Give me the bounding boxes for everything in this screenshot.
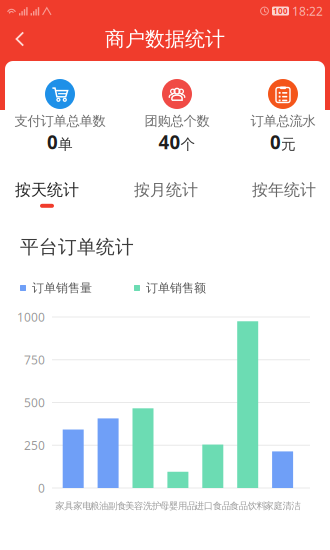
staticText: 个 (180, 135, 195, 153)
staticText: 1000 (17, 309, 45, 325)
staticText: 250 (24, 437, 45, 453)
staticText: 美容洗护 (125, 500, 161, 512)
staticText: 按年统计 (252, 180, 316, 200)
staticText: 500 (24, 394, 45, 410)
button[interactable]: 支付订单总单数 (0, 61, 120, 157)
button[interactable]: 按年统计 (234, 179, 330, 209)
button[interactable]: 按天统计 (0, 179, 97, 209)
staticText: 0 (38, 480, 45, 496)
staticText: 订单销售额 (146, 281, 206, 295)
button[interactable]: Back (0, 22, 40, 56)
staticText: 母婴用品 (160, 500, 196, 512)
staticText: 订单总流水 (250, 113, 315, 129)
staticText: 按月统计 (134, 180, 198, 200)
button[interactable]: 订单总流水 (223, 61, 330, 157)
staticText: 进口食品 (195, 500, 231, 512)
staticText: 支付订单总单数 (14, 113, 105, 129)
button[interactable]: 团购总个数 (117, 61, 237, 157)
staticText: 0 (270, 130, 281, 154)
staticText: 订单销售量 (32, 281, 92, 295)
staticText: 元 (281, 135, 296, 153)
staticText: 商户数据统计 (105, 27, 225, 51)
staticText: 750 (24, 352, 45, 368)
staticText: 40 (158, 130, 180, 154)
staticText: 食品饮料 (230, 500, 266, 512)
staticText: 团购总个数 (144, 113, 209, 129)
staticText: 100 (273, 6, 288, 16)
button[interactable]: 按月统计 (116, 179, 216, 209)
staticText: 0 (47, 130, 58, 154)
staticText: 家庭清洁 (265, 500, 301, 512)
staticText: 单 (58, 135, 73, 153)
staticText: 18:22 (292, 3, 323, 19)
staticText: 粮油副食 (90, 500, 126, 512)
staticText: 家具家电 (55, 500, 91, 512)
staticText: 按天统计 (15, 180, 79, 200)
staticText: 平台订单统计 (20, 235, 134, 258)
